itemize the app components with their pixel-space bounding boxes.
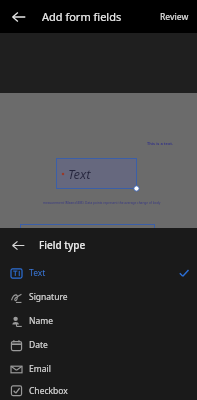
button[interactable]: Email <box>0 357 197 381</box>
staticText: Field type <box>39 238 86 252</box>
staticText: Review <box>160 11 189 23</box>
staticText: Add form fields <box>42 9 122 24</box>
button[interactable]: Text <box>56 158 137 189</box>
staticText: Text <box>68 165 91 183</box>
button[interactable]: Signature <box>0 285 197 309</box>
button[interactable]: Review <box>152 6 197 28</box>
staticText: Name <box>29 315 53 327</box>
staticText: Email <box>29 363 51 375</box>
button[interactable]: Text <box>0 261 197 285</box>
staticText: Signature <box>29 291 68 303</box>
button[interactable]: Checkbox <box>0 381 197 400</box>
button[interactable]: Date <box>0 333 197 357</box>
button[interactable]: Back <box>4 231 32 259</box>
button[interactable]: Name <box>0 309 197 333</box>
staticText: Checkbox <box>29 385 68 397</box>
staticText: Text <box>29 267 46 279</box>
staticText: This is a text. <box>147 141 174 146</box>
button[interactable]: Back <box>4 2 34 32</box>
staticText: measurement (Mean±SEM). Data points repr… <box>43 201 161 205</box>
staticText: Date <box>29 339 48 351</box>
